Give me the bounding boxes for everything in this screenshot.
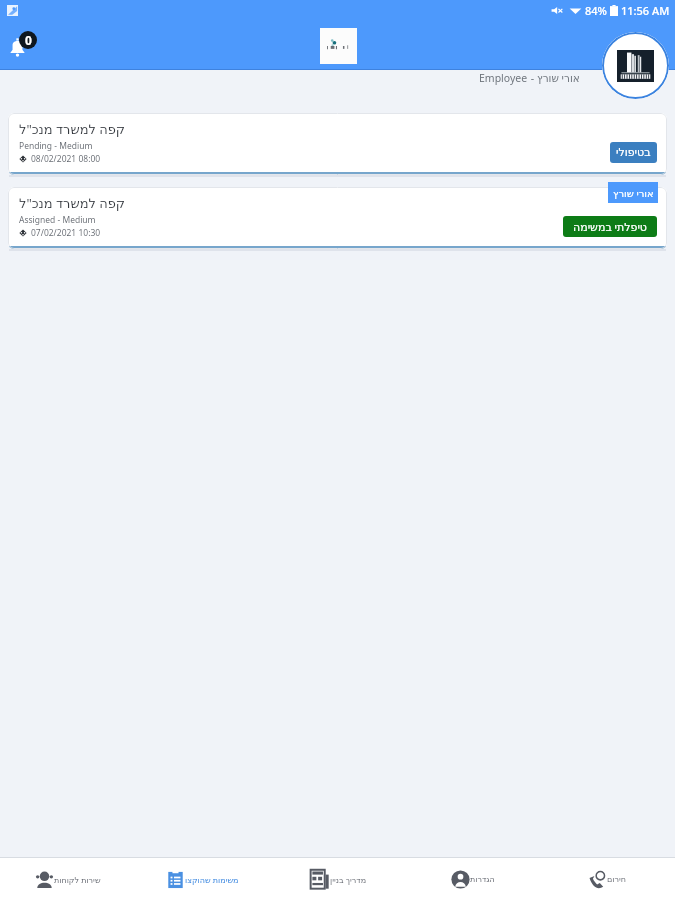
staticText: טיפלתי במשימה <box>573 219 648 234</box>
button[interactable]: מדריך בניין <box>270 858 405 900</box>
button[interactable]: חירום <box>540 858 675 900</box>
staticText: 84% <box>585 3 607 18</box>
staticText: 0 <box>25 32 32 48</box>
button[interactable]: App logo <box>320 28 357 64</box>
button[interactable]: משימות שהוקצו <box>135 858 270 900</box>
button[interactable]: בטיפולי <box>610 142 657 163</box>
staticText: משימות שהוקצו <box>185 874 239 885</box>
staticText: - <box>528 71 537 85</box>
button[interactable]: Profile <box>602 32 669 99</box>
button[interactable]: קפה למשרד מנכ"ל <box>8 113 667 175</box>
staticText: קפה למשרד מנכ"ל <box>19 194 126 212</box>
staticText: Pending - Medium <box>19 140 93 152</box>
staticText: Assigned - Medium <box>19 214 96 226</box>
staticText: בטיפולי <box>616 146 651 159</box>
button[interactable]: טיפלתי במשימה <box>563 216 657 237</box>
staticText: קפה למשרד מנכ"ל <box>19 120 126 138</box>
button[interactable]: Notifications <box>8 31 37 59</box>
staticText: 11:56 AM <box>621 3 670 18</box>
staticText: הגדרות <box>470 875 495 884</box>
staticText: אורי שורץ <box>537 71 580 85</box>
staticText: שירות לקוחות <box>54 874 101 885</box>
staticText: אורי שורץ <box>613 186 654 200</box>
staticText: 08/02/2021 08:00 <box>31 153 101 165</box>
staticText: חירום <box>607 875 627 884</box>
staticText: מדריך בניין <box>330 874 367 885</box>
button[interactable]: שירות לקוחות <box>0 858 135 900</box>
button[interactable]: קפה למשרד מנכ"ל <box>8 187 667 249</box>
button[interactable]: אורי שורץ <box>608 182 658 203</box>
button[interactable]: הגדרות <box>405 858 540 900</box>
staticText: 07/02/2021 10:30 <box>31 227 101 239</box>
staticText: Employee <box>479 71 528 85</box>
